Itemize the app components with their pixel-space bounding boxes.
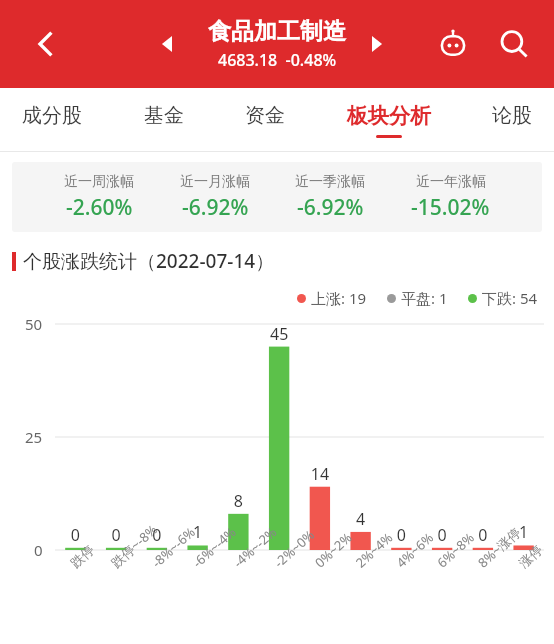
button[interactable]: Back	[22, 20, 70, 68]
staticText: 4683.18 -0.48%	[218, 49, 337, 71]
staticText: 近一季涨幅	[295, 173, 365, 191]
staticText: 近一月涨幅	[180, 173, 250, 191]
staticText: 下跌: 54	[482, 288, 538, 308]
button[interactable]: 板块分析	[339, 88, 439, 152]
staticText: -2.60%	[66, 193, 133, 222]
staticText: 平盘: 1	[401, 288, 448, 308]
staticText: 近一周涨幅	[64, 173, 134, 191]
staticText: 食品加工制造	[208, 17, 346, 46]
button[interactable]: 基金	[136, 88, 192, 152]
button[interactable]: 资金	[237, 88, 293, 152]
staticText: 论股	[492, 103, 532, 128]
staticText: 板块分析	[347, 103, 431, 129]
button[interactable]: Search	[490, 20, 538, 68]
staticText: 基金	[144, 103, 184, 128]
staticText: 成分股	[22, 103, 82, 128]
staticText: -6.92%	[297, 193, 364, 222]
staticText: 资金	[245, 103, 285, 128]
staticText: 近一年涨幅	[416, 173, 486, 191]
button[interactable]: Previous sector	[148, 24, 188, 64]
staticText: 上涨: 19	[311, 288, 367, 308]
button[interactable]: Next sector	[356, 24, 396, 64]
staticText: -15.02%	[411, 193, 490, 222]
button[interactable]: 论股	[484, 88, 540, 152]
button[interactable]: 成分股	[14, 88, 90, 152]
staticText: -6.92%	[182, 193, 249, 222]
button[interactable]: Assistant	[430, 21, 476, 67]
staticText: 个股涨跌统计（2022-07-14）	[23, 248, 275, 274]
